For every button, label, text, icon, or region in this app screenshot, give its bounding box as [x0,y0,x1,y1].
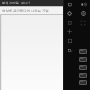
button[interactable]: Display [63,0,76,9]
button[interactable]: Frame [63,36,76,45]
button[interactable]: Crop [76,18,90,27]
staticText: 분석 스타일 [2,1,19,5]
button[interactable]: Volume [76,0,90,9]
button[interactable]: Device 5 [76,79,90,85]
button[interactable]: Device 1 [76,47,90,55]
button[interactable]: Device 4 [76,71,90,79]
button[interactable]: Settings [63,9,76,18]
button[interactable]: 현상에 관리했다면 나와는 기업 [0,6,63,15]
staticText: 현상에 관리했다면 나와는 기업 [2,8,49,13]
button[interactable]: Device 2 [76,55,90,63]
button[interactable]: Target [76,9,90,18]
button[interactable]: 분석 스타일 [0,0,63,6]
button[interactable]: Device 3 [76,63,90,71]
staticText: 검사기 [21,1,30,5]
button[interactable]: Add [63,27,76,36]
button[interactable]: Library [63,18,76,27]
